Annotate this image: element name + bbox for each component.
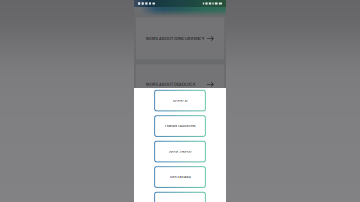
button[interactable]: MORE ABOUT CONCURRENCY: [136, 17, 224, 59]
button[interactable]: TEST AND SET: [154, 90, 206, 111]
staticText: MORE ABOUT CONCURRENCY: [146, 36, 204, 41]
staticText: TURN VARIABLE: [169, 175, 190, 179]
button[interactable]: MORE ABOUT DEADLOCK: [136, 64, 224, 104]
staticText: MORE ABOUT DEADLOCK: [146, 82, 196, 87]
staticText: TEST AND SET: [172, 99, 187, 102]
button[interactable]: DEKKER'S METHOD: [154, 141, 206, 162]
button[interactable]: PETERSON'S ALGORITHM: [154, 115, 206, 137]
staticText: DEKKER'S METHOD: [168, 150, 191, 153]
staticText: PETERSON'S ALGORITHM: [165, 124, 195, 128]
button[interactable]: SEMAPHORES: [154, 192, 206, 202]
button[interactable]: TURN VARIABLE: [154, 166, 206, 188]
